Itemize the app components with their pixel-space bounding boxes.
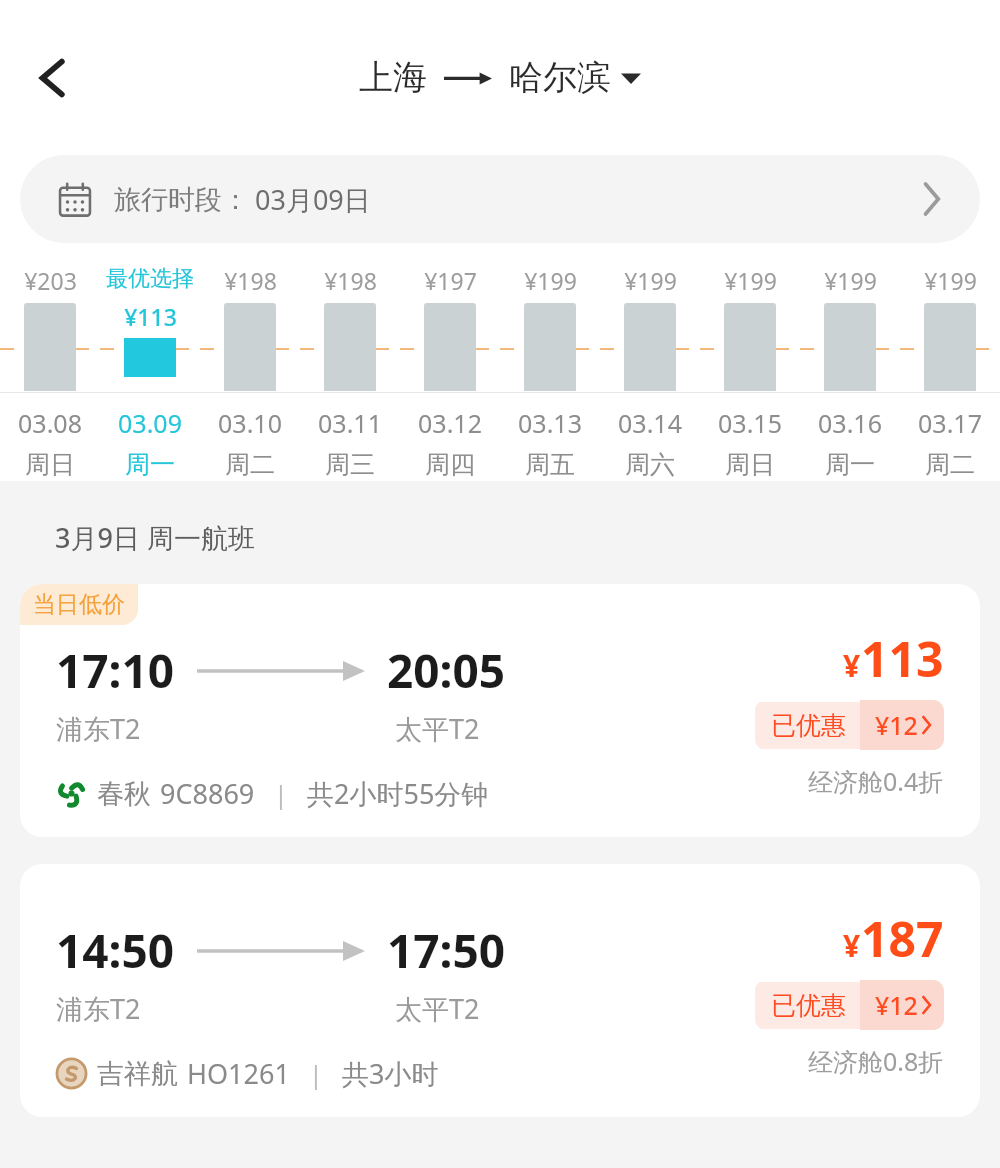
staticText: 03.17 (918, 406, 982, 440)
button[interactable]: ¥199 (900, 265, 1000, 480)
button[interactable]: ¥199 (700, 265, 800, 480)
button[interactable]: ¥203 (0, 265, 100, 480)
staticText: 周五 (525, 449, 575, 480)
button[interactable]: ¥198 (300, 265, 400, 480)
staticText: 旅行时段： (114, 183, 249, 217)
staticText: 已优惠 (771, 710, 846, 741)
button[interactable]: 已优惠 (755, 980, 944, 1030)
staticText: 03.16 (818, 406, 882, 440)
staticText: 当日低价 (33, 590, 125, 619)
staticText: 14:50 (56, 919, 175, 982)
staticText: 187 (861, 906, 944, 971)
button[interactable]: 上海 (359, 56, 641, 99)
staticText: ¥198 (324, 265, 377, 296)
staticText: 周日 (725, 449, 775, 480)
staticText: 经济舱0.8折 (808, 1044, 944, 1078)
staticText: 9C8869 (160, 775, 255, 812)
staticText: 浦东T2 (56, 710, 141, 747)
button[interactable]: 最优选择 (100, 265, 200, 480)
staticText: 周二 (925, 449, 975, 480)
staticText: 哈尔滨 (509, 56, 611, 99)
staticText: 太平T2 (395, 710, 480, 747)
staticText: 周日 (25, 449, 75, 480)
staticText: 20:05 (387, 639, 506, 702)
staticText: 春秋 (97, 777, 151, 811)
staticText: 上海 (359, 56, 427, 99)
button[interactable]: Back (14, 39, 92, 117)
staticText: ¥ (843, 925, 861, 966)
staticText: | (274, 777, 288, 811)
staticText: 03.11 (318, 406, 382, 440)
staticText: ¥199 (824, 265, 877, 296)
staticText: 共2小时55分钟 (307, 775, 489, 812)
button[interactable]: ¥199 (800, 265, 900, 480)
staticText: 03.14 (618, 406, 682, 440)
staticText: HO1261 (187, 1055, 290, 1092)
staticText: ¥197 (424, 265, 477, 296)
staticText: 共3小时 (342, 1055, 439, 1092)
staticText: 周四 (425, 449, 475, 480)
staticText: 周二 (225, 449, 275, 480)
staticText: ¥113 (124, 301, 177, 332)
staticText: 周一 (125, 449, 175, 480)
staticText: 03.13 (518, 406, 582, 440)
staticText: 03.09 (118, 406, 182, 440)
staticText: 周六 (625, 449, 675, 480)
staticText: ¥203 (24, 265, 77, 296)
staticText: 吉祥航 (97, 1057, 178, 1091)
staticText: 太平T2 (395, 990, 480, 1027)
button[interactable]: ¥199 (500, 265, 600, 480)
staticText: 周三 (325, 449, 375, 480)
staticText: 03.10 (218, 406, 282, 440)
staticText: 已优惠 (771, 990, 846, 1021)
staticText: 03月09日 (255, 181, 371, 218)
staticText: 经济舱0.4折 (808, 764, 944, 798)
button[interactable]: 14:50 (20, 864, 980, 1117)
staticText: ¥198 (224, 265, 277, 296)
staticText: ¥12 (875, 988, 918, 1022)
staticText: ¥199 (724, 265, 777, 296)
staticText: 03.15 (718, 406, 782, 440)
button[interactable]: ¥199 (600, 265, 700, 480)
staticText: ¥ (843, 645, 861, 686)
staticText: ¥12 (875, 708, 918, 742)
staticText: ¥199 (924, 265, 977, 296)
button[interactable]: 旅行时段： (20, 155, 980, 243)
button[interactable]: 当日低价 (20, 584, 980, 837)
staticText: | (309, 1057, 323, 1091)
staticText: 03.12 (418, 406, 482, 440)
staticText: 浦东T2 (56, 990, 141, 1027)
staticText: 3月9日 周一航班 (55, 519, 255, 556)
button[interactable]: ¥197 (400, 265, 500, 480)
staticText: 周一 (825, 449, 875, 480)
staticText: 17:10 (56, 639, 175, 702)
staticText: 03.08 (18, 406, 82, 440)
staticText: ¥199 (524, 265, 577, 296)
staticText: 最优选择 (106, 265, 194, 293)
staticText: 17:50 (387, 919, 506, 982)
staticText: 113 (861, 626, 944, 691)
button[interactable]: 已优惠 (755, 700, 944, 750)
staticText: ¥199 (624, 265, 677, 296)
button[interactable]: ¥198 (200, 265, 300, 480)
